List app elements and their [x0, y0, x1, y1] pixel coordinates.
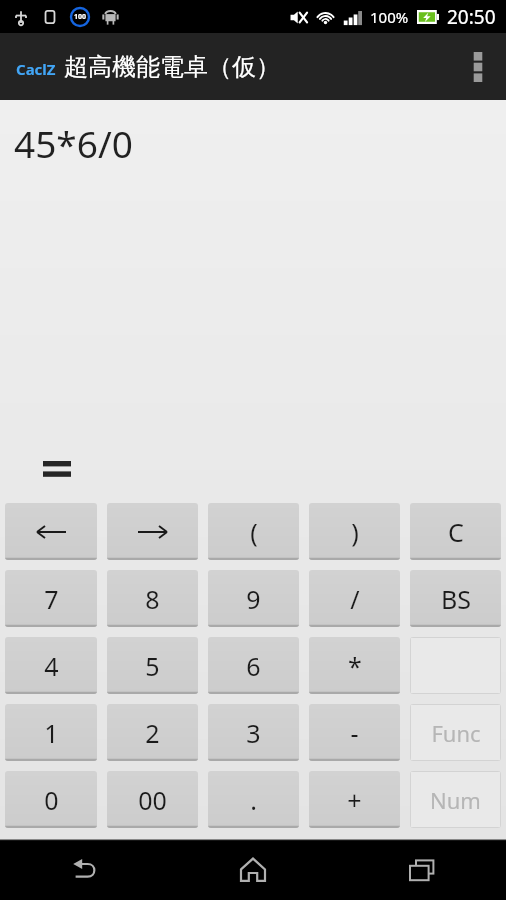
button[interactable]: * — [309, 637, 400, 694]
staticText: 7 — [44, 582, 59, 616]
staticText: 6 — [246, 649, 261, 683]
button[interactable]: 8 — [107, 570, 198, 627]
button[interactable]: 1 — [5, 704, 97, 761]
staticText: - — [350, 716, 359, 750]
staticText: C — [448, 515, 464, 549]
button[interactable]: 2 — [107, 704, 198, 761]
staticText: 4 — [44, 649, 59, 683]
staticText: Func — [431, 718, 481, 748]
button[interactable]: 3 — [208, 704, 299, 761]
button[interactable]: Move cursor right — [107, 503, 198, 560]
button[interactable]: C — [410, 503, 501, 560]
staticText: ( — [250, 515, 258, 549]
button[interactable]: BS — [410, 570, 501, 627]
staticText: 2 — [145, 716, 160, 750]
button[interactable]: 00 — [107, 771, 198, 828]
staticText: 9 — [246, 582, 261, 616]
staticText: ) — [351, 515, 359, 549]
staticText: 100% — [370, 7, 409, 27]
button[interactable]: 7 — [5, 570, 97, 627]
staticText: . — [250, 783, 257, 817]
button[interactable]: 5 — [107, 637, 198, 694]
button[interactable]: Num — [410, 771, 501, 828]
staticText: Num — [430, 785, 481, 815]
staticText: 20:50 — [447, 4, 496, 30]
button[interactable]: ) — [309, 503, 400, 560]
staticText: 00 — [138, 783, 167, 817]
button[interactable]: . — [208, 771, 299, 828]
staticText: 3 — [246, 716, 261, 750]
button[interactable]: / — [309, 570, 400, 627]
button[interactable]: 9 — [208, 570, 299, 627]
button[interactable]: + — [309, 771, 400, 828]
staticText: * — [348, 649, 362, 683]
staticText: BS — [441, 582, 471, 616]
staticText: 0 — [44, 783, 59, 817]
button[interactable]: Back — [0, 840, 168, 900]
button[interactable]: 4 — [5, 637, 97, 694]
staticText: 1 — [44, 716, 59, 750]
button[interactable]: Recent apps — [337, 840, 506, 900]
staticText: + — [347, 783, 362, 817]
staticText: 45*6/0 — [14, 118, 133, 168]
button[interactable]: 6 — [208, 637, 299, 694]
button[interactable]: 0 — [5, 771, 97, 828]
staticText: 100 — [74, 12, 87, 22]
staticText: 8 — [145, 582, 160, 616]
staticText: 5 — [145, 649, 160, 683]
button[interactable]: - — [309, 704, 400, 761]
button[interactable]: ( — [208, 503, 299, 560]
button[interactable] — [410, 637, 501, 694]
button[interactable]: More options — [450, 33, 506, 100]
button[interactable]: Move cursor left — [5, 503, 97, 560]
staticText: 超高機能電卓（仮） — [64, 52, 280, 82]
button[interactable]: Home — [168, 840, 337, 900]
button[interactable]: Func — [410, 704, 501, 761]
staticText: / — [350, 582, 360, 616]
staticText: CaclZ — [16, 59, 56, 79]
